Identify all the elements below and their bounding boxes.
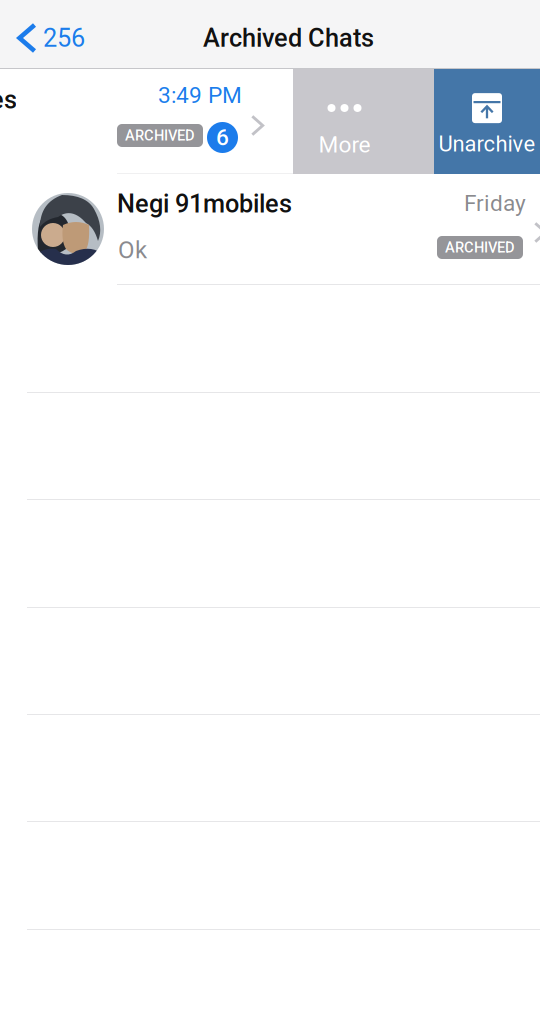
staticText: ARCHIVED	[445, 239, 515, 256]
staticText: Negi 91mobiles	[0, 85, 17, 115]
button[interactable]: 256	[0, 0, 101, 68]
staticText: Ok	[118, 236, 147, 264]
staticText: Archived Chats	[203, 23, 374, 53]
button[interactable]: Unarchive	[434, 69, 540, 174]
button[interactable]: Negi 91mobiles	[0, 69, 293, 174]
staticText: Friday	[464, 190, 526, 217]
button[interactable]: Negi 91mobiles	[0, 174, 540, 285]
staticText: ARCHIVED	[125, 127, 195, 144]
button[interactable]: More	[293, 69, 434, 174]
staticText: More	[318, 131, 370, 158]
staticText: Unarchive	[438, 131, 535, 157]
staticText: 6	[216, 124, 229, 151]
staticText: Negi 91mobiles	[117, 189, 292, 219]
staticText: 256	[43, 23, 85, 53]
staticText: 3:49 PM	[158, 82, 242, 109]
